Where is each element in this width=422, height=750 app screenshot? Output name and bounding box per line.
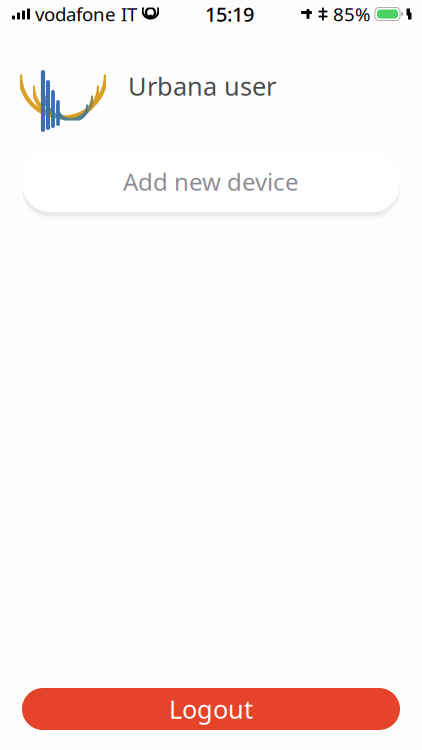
- staticText: Add new device: [123, 166, 299, 197]
- staticText: vodafone IT: [35, 2, 137, 26]
- button[interactable]: Add new device: [22, 151, 400, 212]
- staticText: Logout: [169, 692, 253, 726]
- staticText: Urbana user: [128, 69, 276, 103]
- staticText: 85%: [333, 2, 371, 26]
- staticText: 15:19: [205, 1, 254, 27]
- button[interactable]: Logout: [22, 688, 400, 730]
